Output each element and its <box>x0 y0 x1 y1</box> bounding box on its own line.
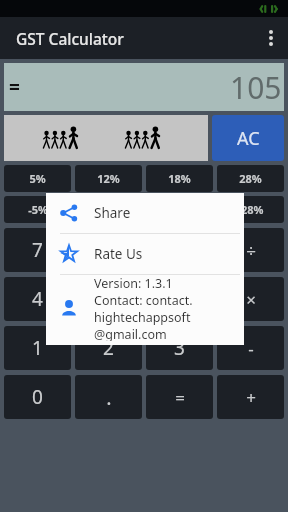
staticText: 0 <box>32 384 43 410</box>
staticText: hightechappsoft <box>94 309 191 326</box>
button[interactable]: ÷ <box>217 228 284 272</box>
staticText: 18% <box>168 171 191 186</box>
staticText: - <box>248 337 254 360</box>
button[interactable]: 18% <box>146 165 213 192</box>
staticText: -5% <box>28 202 48 217</box>
staticText: 12% <box>97 171 120 186</box>
button[interactable]: Rate Us <box>46 234 244 274</box>
button[interactable]: 12% <box>75 165 142 192</box>
staticText: = <box>175 386 185 409</box>
staticText: @gmail.com <box>94 326 167 341</box>
staticText: + <box>246 386 256 409</box>
staticText: 5 <box>103 286 114 312</box>
staticText: Share <box>94 204 131 222</box>
other: Share <box>60 204 78 222</box>
staticText: Version: 1.3.1 <box>94 275 173 292</box>
button[interactable]: 1 <box>4 326 71 370</box>
button[interactable]: 28% <box>217 165 284 192</box>
button[interactable]: . <box>75 375 142 419</box>
button[interactable]: 5% <box>4 165 71 192</box>
staticText: -12% <box>95 202 122 217</box>
button[interactable]: 0 <box>4 375 71 419</box>
staticText: 28% <box>239 171 262 186</box>
button[interactable]: Contact <box>46 275 244 341</box>
staticText: AC <box>237 126 260 151</box>
staticText: 3 <box>174 335 185 361</box>
other: Contact <box>60 299 78 317</box>
staticText: Contact: contact. <box>94 292 193 309</box>
button[interactable]: Share <box>46 193 244 233</box>
other: Rate Us <box>60 245 78 263</box>
staticText: . <box>106 384 112 411</box>
staticText: 2 <box>103 335 114 361</box>
button[interactable]: More options <box>254 17 288 59</box>
button[interactable]: 6 <box>146 277 213 321</box>
button[interactable] <box>4 115 208 161</box>
button[interactable]: -5% <box>4 196 71 223</box>
button[interactable]: -28% <box>217 196 284 223</box>
staticText: = <box>9 74 20 100</box>
staticText: 8 <box>103 237 114 263</box>
button[interactable]: = <box>4 63 284 111</box>
button[interactable]: - <box>217 326 284 370</box>
staticText: GST Calculator <box>16 28 124 49</box>
button[interactable]: 8 <box>75 228 142 272</box>
button[interactable]: AC <box>212 115 284 161</box>
staticText: 6 <box>174 286 185 312</box>
button[interactable]: 5 <box>75 277 142 321</box>
staticText: ÷ <box>246 239 256 262</box>
button[interactable]: -12% <box>75 196 142 223</box>
button[interactable]: × <box>217 277 284 321</box>
button[interactable]: 7 <box>4 228 71 272</box>
button[interactable]: 4 <box>4 277 71 321</box>
button[interactable]: + <box>217 375 284 419</box>
staticText: Rate Us <box>94 245 143 263</box>
staticText: × <box>246 288 256 311</box>
staticText: 1 <box>32 335 43 361</box>
staticText: 7 <box>32 237 43 263</box>
staticText: -28% <box>237 202 264 217</box>
button[interactable]: = <box>146 375 213 419</box>
button[interactable]: 2 <box>75 326 142 370</box>
button[interactable]: 9 <box>146 228 213 272</box>
staticText: 4 <box>32 286 43 312</box>
staticText: 5% <box>29 171 46 186</box>
staticText: 105 <box>230 67 282 108</box>
button[interactable]: 3 <box>146 326 213 370</box>
